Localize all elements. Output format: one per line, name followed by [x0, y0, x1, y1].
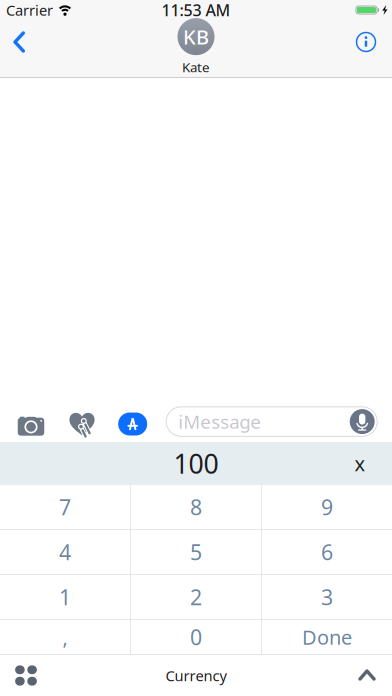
button[interactable]: Back: [2, 22, 36, 62]
staticText: 2: [190, 583, 202, 611]
button[interactable]: 6: [262, 530, 392, 574]
button[interactable]: 9: [262, 485, 392, 529]
staticText: iMessage: [178, 409, 261, 434]
staticText: Done: [302, 624, 352, 650]
button[interactable]: Expand keyboard: [350, 661, 384, 689]
button[interactable]: 4: [0, 530, 130, 574]
button[interactable]: iMessage text field: [166, 407, 377, 436]
button[interactable]: 2: [131, 575, 261, 619]
button[interactable]: 5: [131, 530, 261, 574]
staticText: Carrier: [6, 0, 53, 20]
button[interactable]: 1: [0, 575, 130, 619]
button[interactable]: Kate, conversation details: [177, 18, 214, 76]
staticText: KB: [183, 23, 209, 50]
button[interactable]: 8: [131, 485, 261, 529]
staticText: 11:53 AM: [161, 0, 230, 21]
button[interactable]: ,: [0, 620, 130, 654]
button[interactable]: 3: [262, 575, 392, 619]
staticText: 4: [59, 538, 71, 566]
staticText: x: [354, 450, 365, 477]
button[interactable]: Digital Touch: [66, 409, 98, 439]
staticText: 6: [321, 538, 333, 566]
button[interactable]: Clear: [340, 448, 380, 478]
button[interactable]: Done: [262, 620, 392, 654]
button[interactable]: Camera: [14, 410, 48, 440]
staticText: 9: [321, 493, 333, 521]
button[interactable]: 7: [0, 485, 130, 529]
staticText: 100: [173, 446, 218, 481]
staticText: 3: [321, 583, 333, 611]
staticText: 1: [59, 583, 71, 611]
button[interactable]: iMessage apps: [118, 412, 147, 435]
staticText: 0: [190, 623, 202, 651]
staticText: 8: [190, 493, 202, 521]
staticText: Kate: [182, 58, 210, 76]
button[interactable]: Info: [351, 27, 381, 57]
staticText: ,: [62, 624, 67, 650]
staticText: Currency: [165, 666, 226, 685]
staticText: 7: [59, 493, 71, 521]
button[interactable]: 0: [131, 620, 261, 654]
staticText: 5: [190, 538, 202, 566]
button[interactable]: App drawer: [8, 658, 44, 692]
